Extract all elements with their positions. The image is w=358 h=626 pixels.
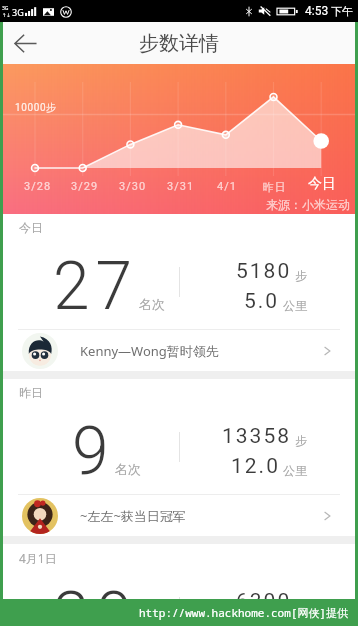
staticText: 5.0: [244, 289, 280, 314]
button[interactable]: ~左左~获当日冠军: [3, 495, 355, 536]
staticText: 名次: [139, 296, 165, 312]
staticText: 4/1: [217, 180, 237, 193]
button[interactable]: Back: [3, 22, 47, 64]
staticText: http://www.hackhome.com[网侠]提供: [139, 605, 348, 620]
staticText: 4月1日: [19, 550, 57, 566]
staticText: 今日: [19, 220, 43, 235]
staticText: 昨日: [19, 385, 43, 400]
staticText: 名次: [139, 604, 165, 620]
staticText: 名次: [115, 461, 141, 477]
staticText: ~左左~获当日冠军: [80, 507, 321, 525]
staticText: 步: [295, 598, 307, 613]
staticText: 27: [53, 248, 139, 325]
staticText: 20: [53, 578, 139, 626]
staticText: 10000步: [15, 101, 57, 114]
staticText: 公里: [283, 463, 307, 478]
staticText: 步数详情: [139, 31, 219, 56]
staticText: 9: [72, 413, 115, 490]
button[interactable]: Kenny—Wong暂时领先: [3, 330, 355, 371]
staticText: 3/30: [119, 180, 147, 193]
staticText: 6300: [236, 589, 292, 614]
staticText: 公里: [283, 298, 307, 313]
staticText: 来源：小米运动: [266, 197, 350, 212]
staticText: 3G: [12, 6, 24, 18]
staticText: Kenny—Wong暂时领先: [80, 342, 321, 360]
staticText: 步: [295, 433, 307, 448]
staticText: 4:53: [305, 4, 329, 18]
staticText: 3G ↑↓: [2, 5, 11, 18]
staticText: 12.0: [231, 454, 280, 479]
staticText: 5180: [236, 259, 292, 284]
staticText: 3/29: [71, 180, 99, 193]
staticText: 今日: [308, 175, 336, 193]
staticText: 3/28: [24, 180, 52, 193]
staticText: 13358: [222, 424, 292, 449]
staticText: 步: [295, 268, 307, 283]
staticText: 3/31: [167, 180, 195, 193]
staticText: 下午: [331, 4, 353, 18]
staticText: 昨日: [262, 180, 286, 194]
